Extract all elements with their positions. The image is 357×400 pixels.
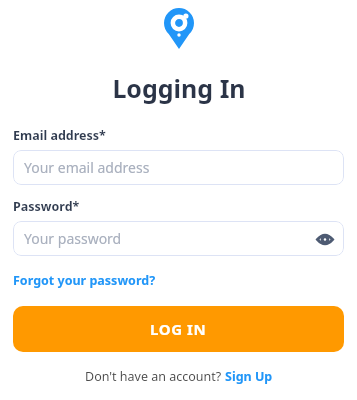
staticText: LOG IN <box>150 319 207 339</box>
staticText: Email address* <box>13 127 106 144</box>
staticText: Your email address <box>24 158 150 177</box>
staticText: Logging In <box>112 71 246 105</box>
staticText: Password* <box>13 198 80 215</box>
button[interactable]: Your password <box>13 221 344 256</box>
button[interactable]: Forgot your password? <box>13 272 156 289</box>
button[interactable]: Show password <box>315 229 335 249</box>
staticText: Don't have an account? <box>85 368 225 385</box>
button[interactable]: Your email address <box>13 150 344 185</box>
staticText: Forgot your password? <box>13 272 156 289</box>
staticText: Sign Up <box>225 368 273 385</box>
button[interactable]: LOG IN <box>13 306 344 352</box>
staticText: Your password <box>24 229 122 248</box>
button[interactable]: Sign Up <box>225 368 273 385</box>
